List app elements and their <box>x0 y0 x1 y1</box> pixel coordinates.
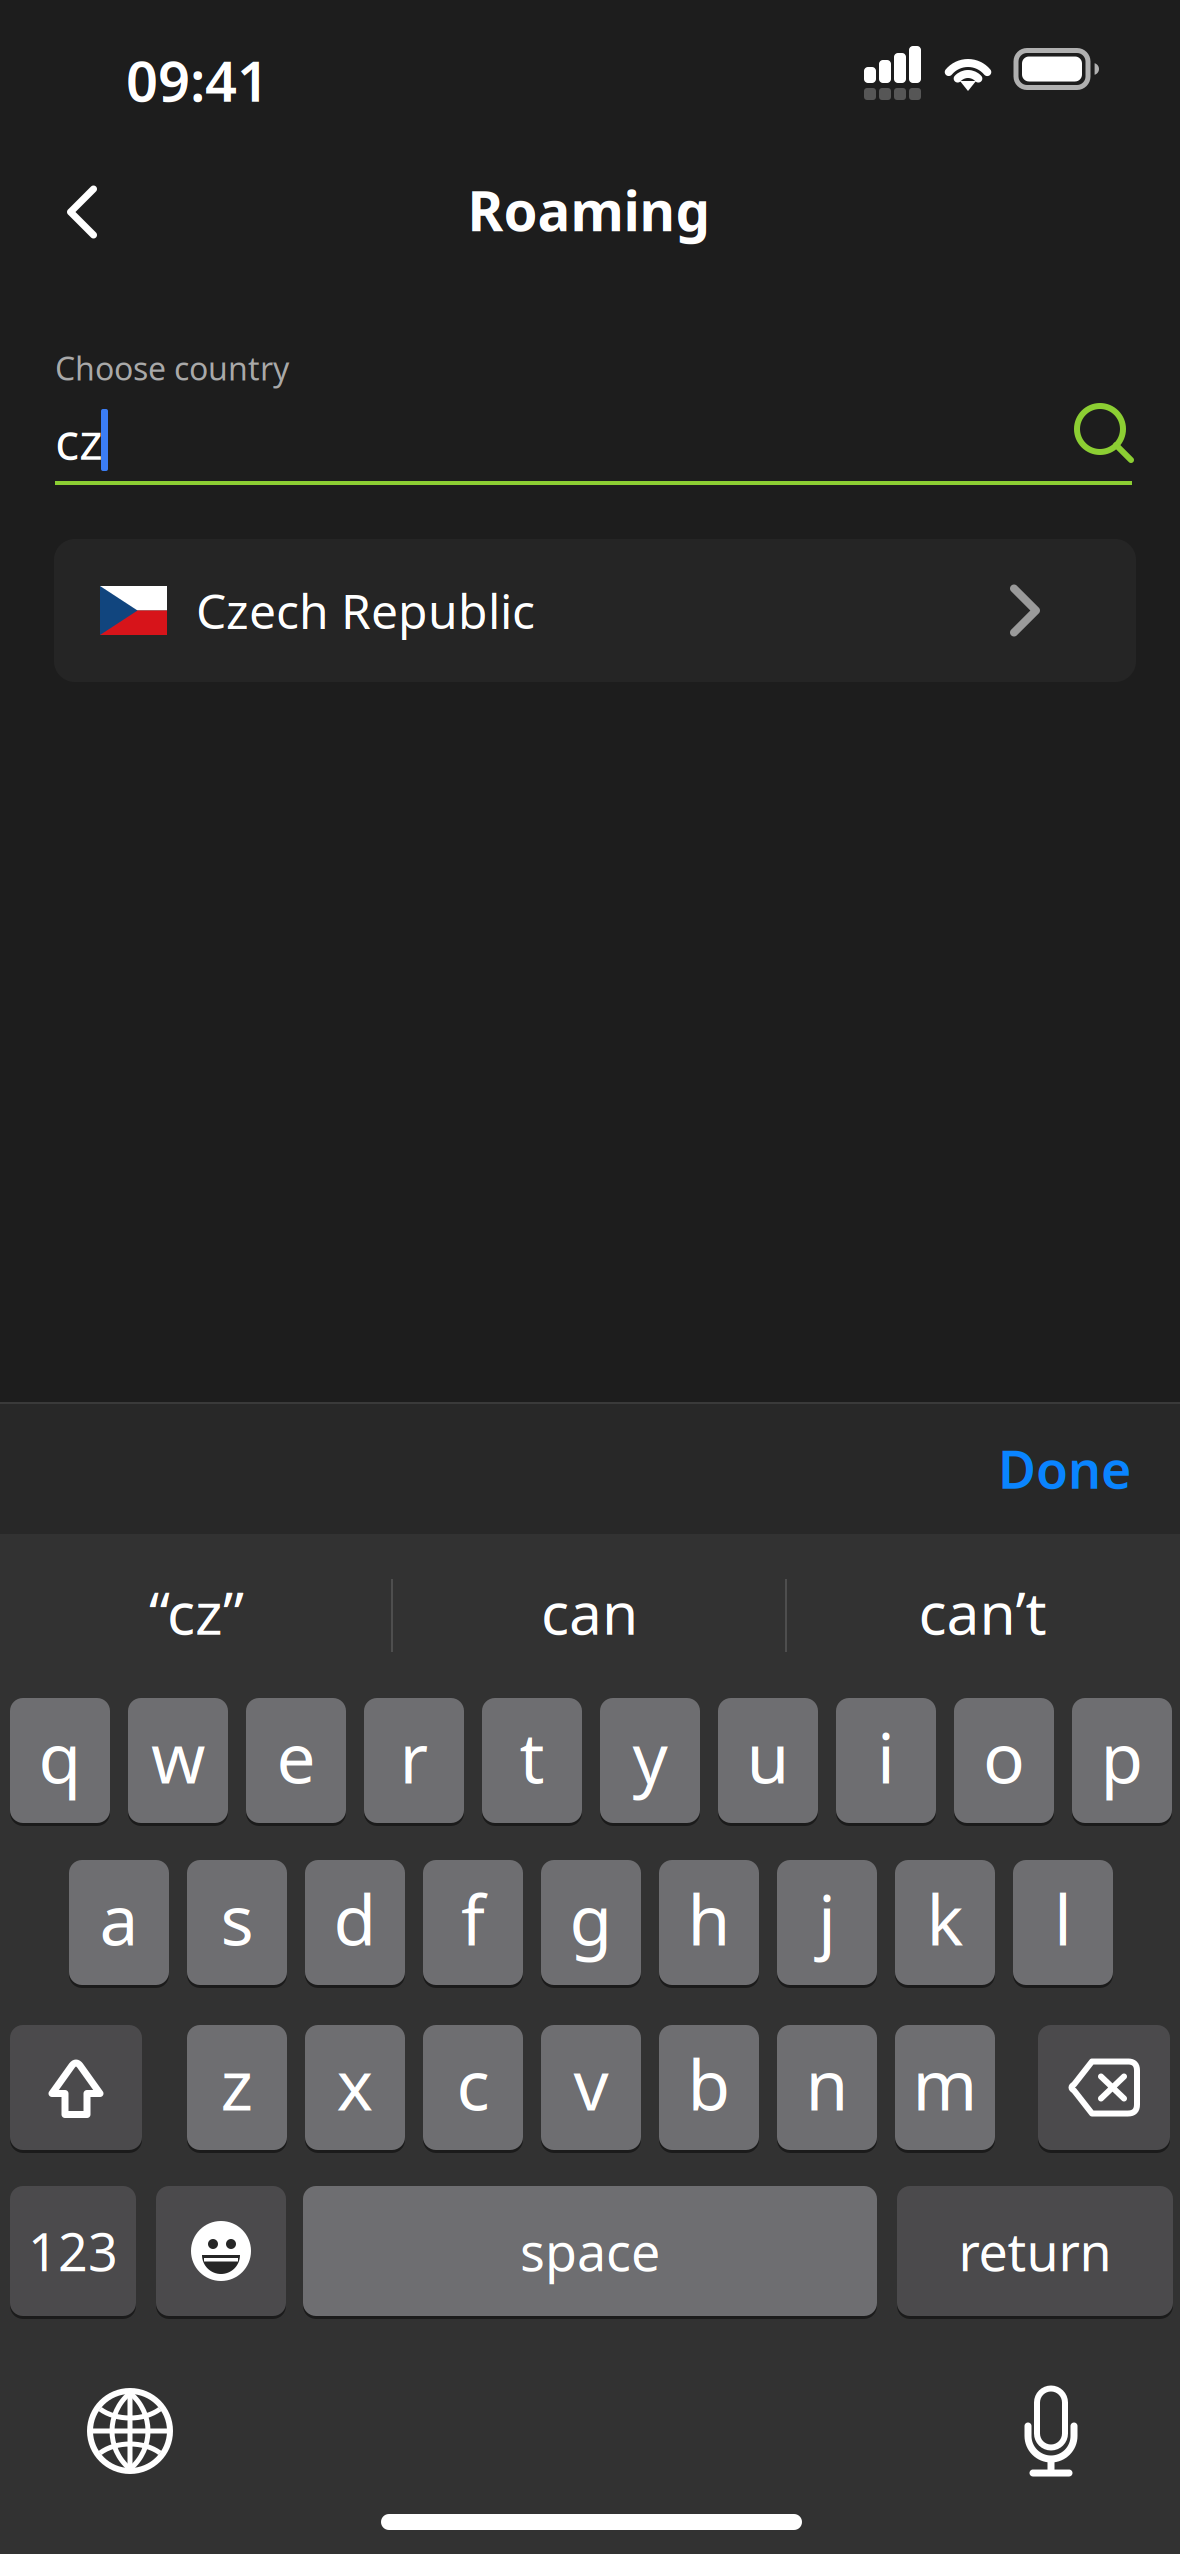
button[interactable]: Czech Republic <box>54 539 1136 682</box>
button[interactable]: “cz” <box>0 1574 393 1650</box>
staticText: k <box>926 1872 963 1965</box>
staticText: Roaming <box>467 174 710 246</box>
staticText: l <box>1054 1872 1072 1965</box>
button[interactable]: o <box>954 1695 1054 1826</box>
button[interactable]: s <box>187 1857 287 1988</box>
button[interactable]: b <box>659 2022 759 2153</box>
staticText: can’t <box>918 1573 1046 1651</box>
staticText: n <box>805 2037 848 2130</box>
staticText: cz <box>55 406 103 474</box>
button[interactable]: f <box>423 1857 523 1988</box>
staticText: x <box>336 2037 373 2130</box>
button[interactable]: can’t <box>786 1574 1179 1650</box>
staticText: i <box>877 1710 895 1803</box>
staticText: s <box>220 1872 253 1965</box>
staticText: Choose country <box>55 347 289 389</box>
staticText: v <box>573 2037 608 2130</box>
staticText: q <box>38 1710 81 1803</box>
button[interactable]: space <box>303 2183 877 2319</box>
staticText: space <box>520 2216 660 2286</box>
button[interactable]: a <box>69 1857 169 1988</box>
staticText: return <box>958 2216 1111 2286</box>
button[interactable]: Search <box>1045 382 1163 488</box>
button[interactable]: Dictation <box>972 2350 1130 2508</box>
staticText: f <box>461 1872 485 1965</box>
button[interactable]: i <box>836 1695 936 1826</box>
staticText: o <box>983 1710 1025 1803</box>
button[interactable]: Numbers <box>10 2183 136 2319</box>
button[interactable]: e <box>246 1695 346 1826</box>
staticText: a <box>99 1872 138 1965</box>
staticText: d <box>333 1872 376 1965</box>
button[interactable]: r <box>364 1695 464 1826</box>
staticText: e <box>276 1710 315 1803</box>
button[interactable]: Done <box>972 1414 1157 1523</box>
button[interactable]: u <box>718 1695 818 1826</box>
button[interactable]: h <box>659 1857 759 1988</box>
staticText: c <box>456 2037 489 2130</box>
button[interactable]: Shift <box>10 2022 142 2153</box>
button[interactable]: p <box>1072 1695 1172 1826</box>
button[interactable]: v <box>541 2022 641 2153</box>
staticText: g <box>569 1872 612 1965</box>
staticText: Done <box>998 1434 1131 1503</box>
button[interactable]: d <box>305 1857 405 1988</box>
staticText: “cz” <box>149 1573 244 1651</box>
button[interactable]: Next keyboard <box>50 2350 208 2508</box>
button[interactable]: Backspace <box>1038 2022 1170 2153</box>
staticText: y <box>632 1710 667 1803</box>
button[interactable]: j <box>777 1857 877 1988</box>
button[interactable]: t <box>482 1695 582 1826</box>
button[interactable]: z <box>187 2022 287 2153</box>
button[interactable]: Back <box>30 165 140 261</box>
button[interactable]: q <box>10 1695 110 1826</box>
staticText: m <box>912 2037 977 2130</box>
button[interactable]: return <box>897 2183 1173 2319</box>
staticText: 123 <box>28 2216 118 2286</box>
button[interactable]: g <box>541 1857 641 1988</box>
button[interactable]: Emoji <box>156 2183 286 2319</box>
staticText: r <box>399 1710 428 1803</box>
staticText: z <box>220 2037 253 2130</box>
staticText: h <box>687 1872 730 1965</box>
staticText: t <box>519 1710 544 1803</box>
button[interactable]: can <box>393 1574 786 1650</box>
staticText: 09:41 <box>126 43 269 117</box>
button[interactable]: l <box>1013 1857 1113 1988</box>
staticText: Czech Republic <box>196 579 535 642</box>
button[interactable]: x <box>305 2022 405 2153</box>
staticText: w <box>151 1710 205 1803</box>
button[interactable]: w <box>128 1695 228 1826</box>
button[interactable]: c <box>423 2022 523 2153</box>
button[interactable]: n <box>777 2022 877 2153</box>
staticText: p <box>1100 1710 1143 1803</box>
button[interactable]: y <box>600 1695 700 1826</box>
staticText: can <box>541 1573 638 1651</box>
staticText: u <box>746 1710 789 1803</box>
button[interactable]: k <box>895 1857 995 1988</box>
button[interactable]: m <box>895 2022 995 2153</box>
staticText: b <box>687 2037 730 2130</box>
staticText: j <box>818 1872 836 1965</box>
